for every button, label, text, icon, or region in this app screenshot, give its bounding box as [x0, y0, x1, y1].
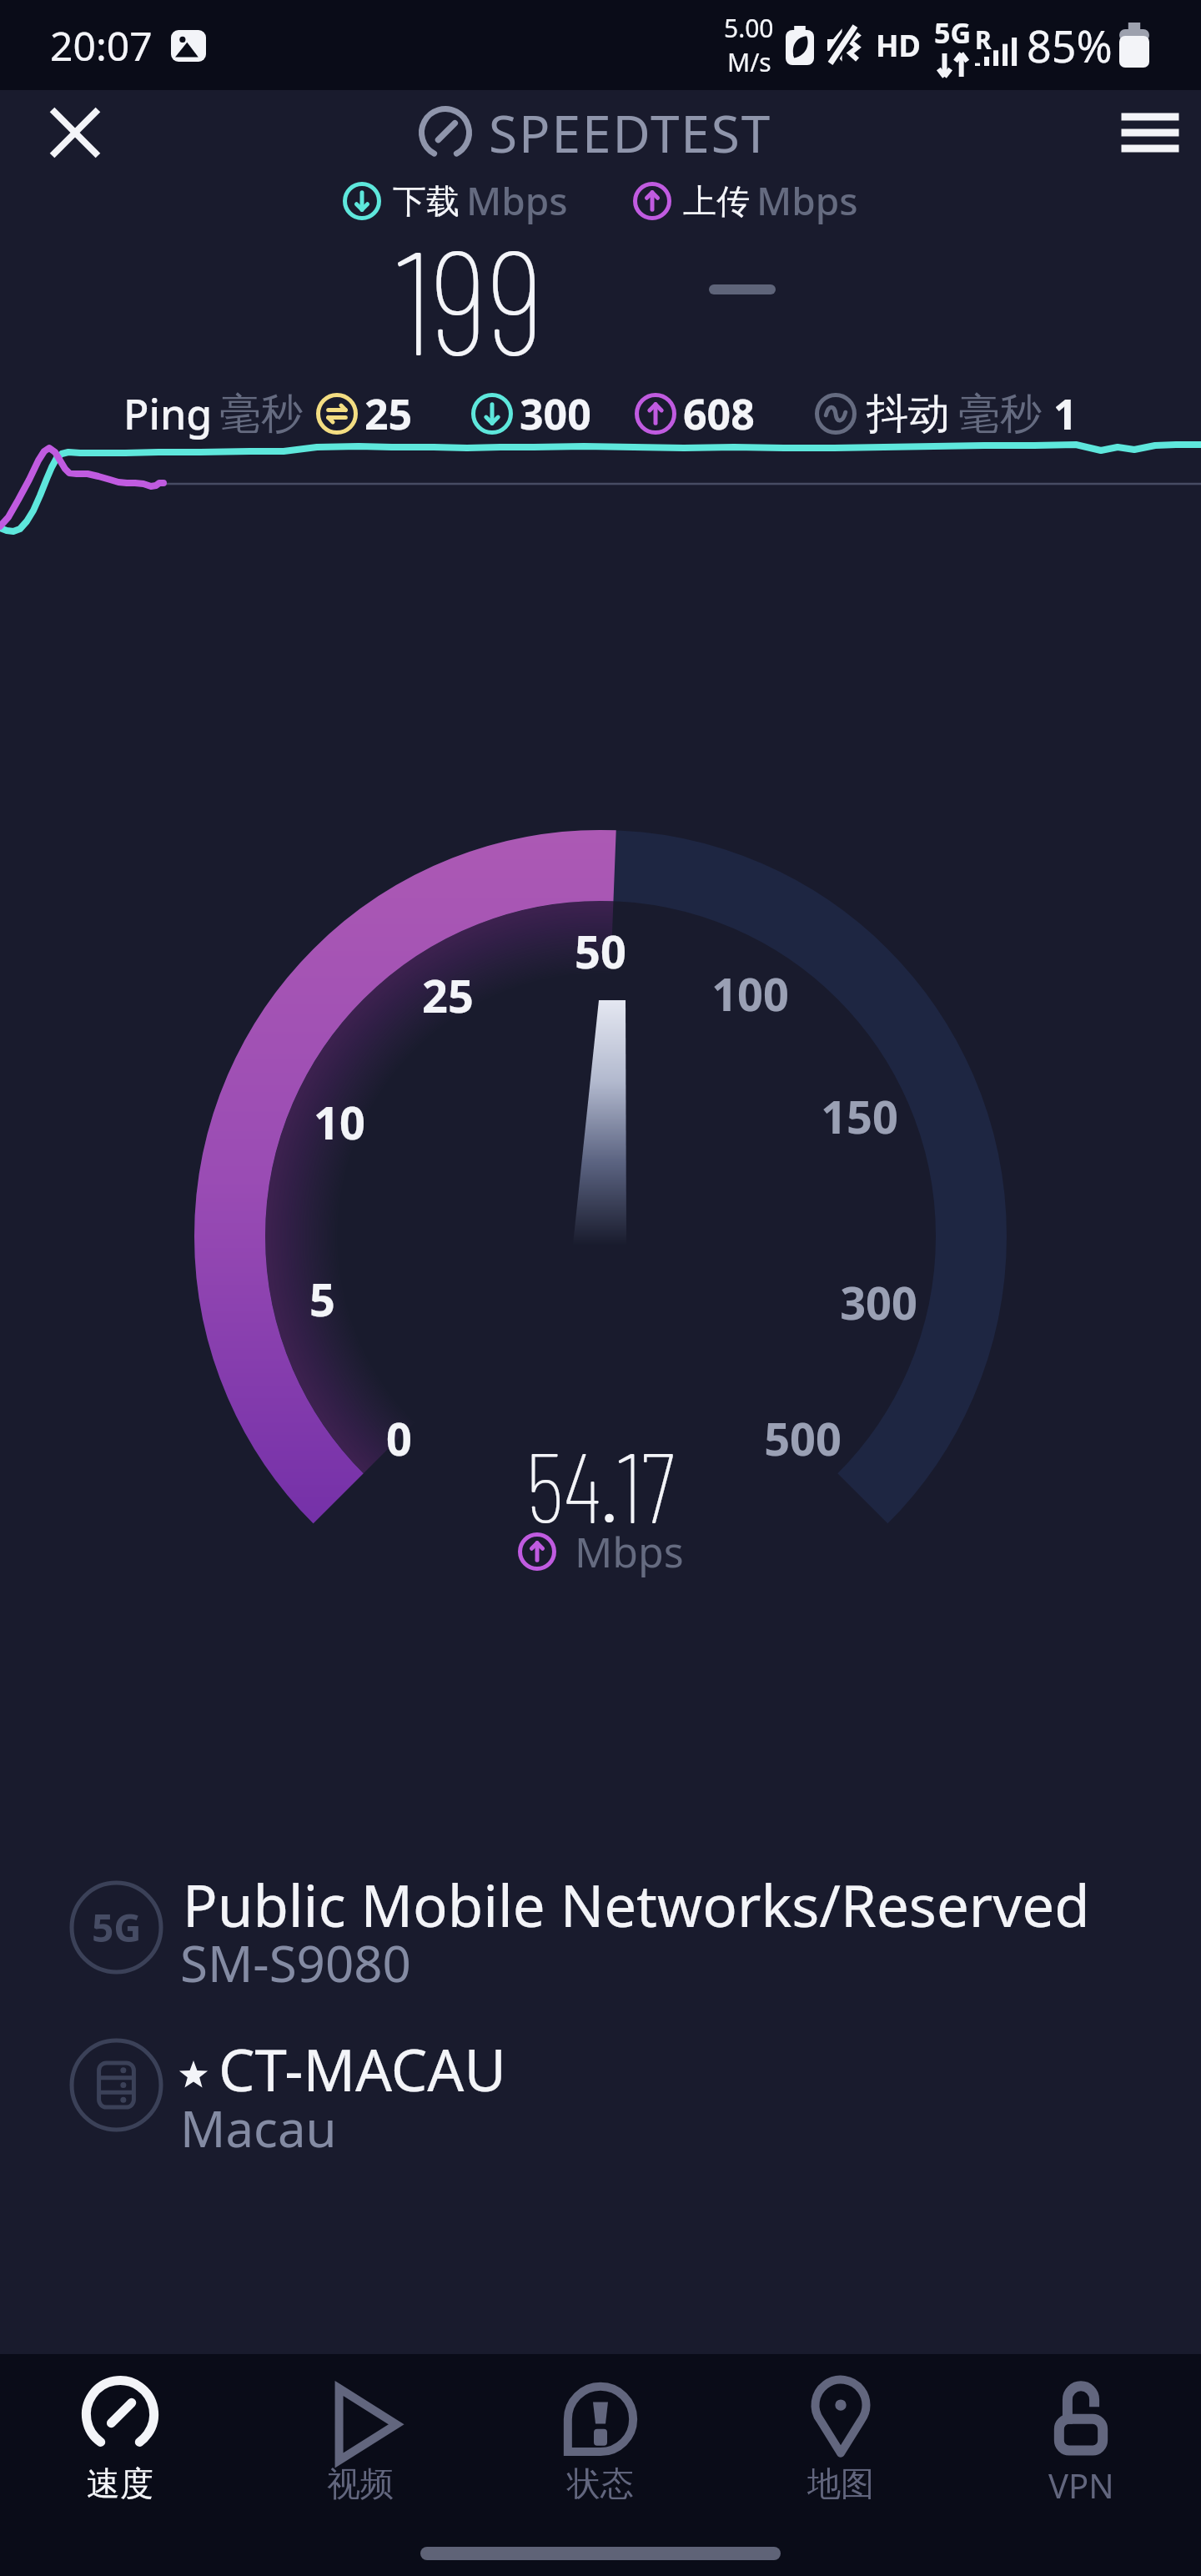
button[interactable]: 速度	[0, 2354, 240, 2521]
staticText: R	[975, 23, 992, 57]
staticText: Mbps	[575, 1523, 684, 1580]
staticText: 500	[764, 1407, 842, 1469]
staticText: 下载	[393, 180, 460, 222]
staticText: 毫秒	[958, 388, 1042, 440]
staticText: Macau	[180, 2094, 337, 2162]
staticText: 150	[821, 1085, 898, 1147]
staticText: 5G	[934, 13, 972, 52]
staticText: 抖动	[867, 388, 950, 440]
staticText: 608	[683, 385, 755, 442]
staticText: 毫秒	[219, 388, 303, 440]
staticText: 50	[575, 920, 626, 982]
staticText: 25	[364, 385, 413, 442]
button[interactable]: 状态	[480, 2354, 721, 2521]
staticText: 状态	[567, 2463, 634, 2504]
staticText: 视频	[327, 2463, 394, 2504]
staticText: 5G	[92, 1901, 142, 1954]
staticText: 上传	[683, 180, 750, 222]
staticText: 85%	[1027, 16, 1113, 75]
staticText: 25	[422, 964, 474, 1026]
staticText: SPEEDTEST	[489, 98, 772, 168]
staticText: 20:07	[50, 18, 153, 73]
staticText: 0	[386, 1407, 412, 1469]
staticText: VPN	[1048, 2463, 1114, 2508]
staticText: SM-S9080	[180, 1929, 411, 1997]
button[interactable]: 地图	[721, 2354, 961, 2521]
staticText: Mbps	[466, 174, 568, 227]
staticText: Ping	[123, 385, 213, 442]
staticText: 速度	[87, 2463, 153, 2504]
staticText: 54.17	[525, 1425, 676, 1543]
button[interactable]: 视频	[240, 2354, 480, 2521]
staticText: HD	[876, 25, 921, 66]
staticText: 地图	[807, 2463, 874, 2504]
staticText: 199	[396, 209, 545, 385]
staticText: 5	[309, 1268, 335, 1330]
staticText: 5.00	[724, 11, 774, 45]
button[interactable]: Close	[35, 93, 115, 173]
staticText: 300	[520, 385, 591, 442]
button[interactable]: 5G	[0, 1854, 1201, 2009]
staticText: CT-MACAU	[219, 2030, 506, 2108]
button[interactable]: Menu	[1108, 91, 1192, 174]
button[interactable]: CT-MACAU	[0, 2012, 1201, 2167]
staticText: 1	[1053, 385, 1078, 442]
staticText: 100	[711, 963, 789, 1024]
staticText: 10	[314, 1091, 365, 1153]
staticText: Public Mobile Networks/Reserved	[183, 1865, 1090, 1944]
staticText: M/s	[727, 45, 771, 79]
staticText: 300	[840, 1271, 917, 1333]
button[interactable]: VPN	[961, 2354, 1201, 2521]
staticText: Mbps	[756, 174, 858, 227]
